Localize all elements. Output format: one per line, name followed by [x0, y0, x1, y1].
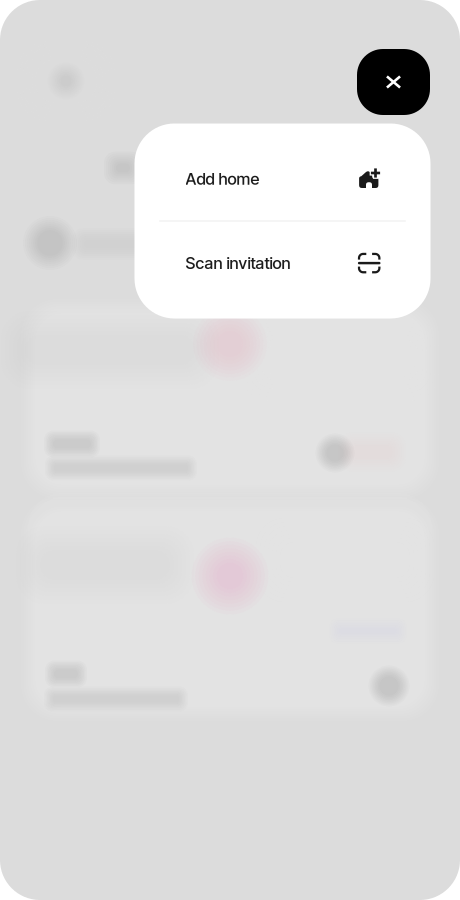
button[interactable]: Close [357, 49, 430, 115]
staticText: Scan invitation [185, 253, 290, 273]
button[interactable]: Add home [134, 137, 430, 220]
staticText: Add home [185, 169, 259, 189]
button[interactable]: Scan invitation [134, 222, 430, 305]
